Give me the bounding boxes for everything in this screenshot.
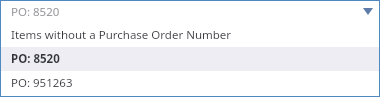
staticText: PO: 8520 xyxy=(11,4,60,20)
button[interactable]: PO: 951263 xyxy=(1,71,379,95)
button[interactable]: Purchase order combo box xyxy=(0,0,380,23)
staticText: PO: 8520 xyxy=(11,51,60,67)
button[interactable]: PO: 8520 xyxy=(1,47,379,71)
button[interactable]: Show suggestions xyxy=(356,0,380,23)
button[interactable]: Items without a Purchase Order Number xyxy=(1,23,379,47)
staticText: PO: 951263 xyxy=(11,75,73,91)
staticText: Items without a Purchase Order Number xyxy=(11,27,232,43)
